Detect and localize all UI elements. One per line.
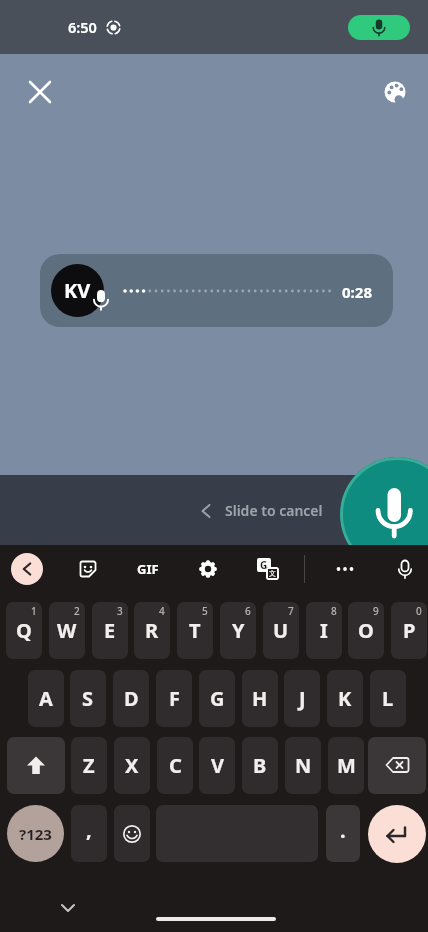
staticText: W xyxy=(57,617,77,644)
button[interactable]: I xyxy=(306,602,342,659)
staticText: 6:50 xyxy=(68,17,97,37)
staticText: 3 xyxy=(117,604,123,618)
staticText: O xyxy=(358,617,374,644)
staticText: P xyxy=(403,617,416,644)
button[interactable]: P xyxy=(391,602,427,659)
button[interactable] xyxy=(156,917,276,921)
staticText: A xyxy=(39,685,53,712)
button[interactable]: F xyxy=(156,670,192,727)
button[interactable] xyxy=(72,553,104,585)
staticText: Slide to cancel xyxy=(225,501,323,520)
button[interactable]: G xyxy=(252,553,284,585)
staticText: X xyxy=(125,752,139,779)
button[interactable] xyxy=(114,805,150,862)
staticText: L xyxy=(382,685,394,712)
staticText: 0 xyxy=(416,604,422,618)
staticText: H xyxy=(252,685,268,712)
staticText: V xyxy=(211,752,224,779)
staticText: 文 xyxy=(269,569,276,578)
staticText: ?123 xyxy=(19,824,52,844)
staticText: 7 xyxy=(288,604,294,618)
button[interactable]: . xyxy=(326,805,360,862)
button[interactable]: X xyxy=(114,737,150,794)
staticText: G xyxy=(210,685,225,712)
button[interactable]: , xyxy=(71,805,107,862)
button[interactable]: R xyxy=(134,602,170,659)
button[interactable]: KV xyxy=(40,254,393,327)
button[interactable]: L xyxy=(370,670,406,727)
button[interactable]: Q xyxy=(6,602,42,659)
button[interactable]: Slide to cancel xyxy=(198,495,333,527)
staticText: 4 xyxy=(159,604,165,618)
button[interactable]: E xyxy=(92,602,128,659)
button[interactable] xyxy=(379,76,411,108)
button[interactable] xyxy=(368,737,426,794)
button[interactable]: J xyxy=(284,670,320,727)
staticText: U xyxy=(273,617,289,644)
button[interactable] xyxy=(348,15,410,40)
button[interactable] xyxy=(53,893,83,923)
staticText: M xyxy=(337,752,356,779)
staticText: GIF xyxy=(137,560,159,578)
button[interactable]: B xyxy=(242,737,278,794)
staticText: D xyxy=(124,685,139,712)
button[interactable]: D xyxy=(113,670,149,727)
button[interactable]: H xyxy=(242,670,278,727)
staticText: 1 xyxy=(31,604,37,618)
button[interactable] xyxy=(24,76,56,108)
button[interactable] xyxy=(340,457,428,572)
staticText: Q xyxy=(16,617,32,644)
staticText: I xyxy=(320,617,328,644)
staticText: J xyxy=(299,685,306,712)
staticText: 8 xyxy=(331,604,337,618)
staticText: 0:28 xyxy=(342,282,372,302)
staticText: T xyxy=(189,617,201,644)
button[interactable]: GIF xyxy=(132,553,164,585)
button[interactable]: S xyxy=(70,670,106,727)
staticText: B xyxy=(253,752,267,779)
button[interactable]: V xyxy=(199,737,235,794)
staticText: R xyxy=(145,617,159,644)
button[interactable]: K xyxy=(327,670,363,727)
button[interactable]: ?123 xyxy=(7,805,64,862)
button[interactable]: T xyxy=(177,602,213,659)
button[interactable]: M xyxy=(328,737,364,794)
staticText: KV xyxy=(64,277,91,304)
staticText: 5 xyxy=(202,604,208,618)
staticText: K xyxy=(338,685,352,712)
button[interactable] xyxy=(389,553,421,585)
staticText: 6 xyxy=(245,604,251,618)
staticText: E xyxy=(104,617,116,644)
button[interactable]: C xyxy=(157,737,193,794)
staticText: Y xyxy=(232,617,245,644)
button[interactable] xyxy=(192,553,224,585)
button[interactable] xyxy=(368,805,426,863)
staticText: , xyxy=(86,816,92,843)
button[interactable]: A xyxy=(28,670,64,727)
button[interactable] xyxy=(329,553,361,585)
staticText: Z xyxy=(83,752,95,779)
staticText: F xyxy=(169,685,180,712)
button[interactable]: W xyxy=(49,602,85,659)
button[interactable]: U xyxy=(263,602,299,659)
button[interactable]: N xyxy=(285,737,321,794)
staticText: C xyxy=(169,752,182,779)
button[interactable] xyxy=(11,553,43,585)
staticText: N xyxy=(295,752,312,779)
button[interactable] xyxy=(7,737,65,794)
staticText: . xyxy=(340,817,346,844)
button[interactable]: O xyxy=(348,602,384,659)
button[interactable]: Z xyxy=(71,737,107,794)
staticText: 2 xyxy=(74,604,80,618)
staticText: 9 xyxy=(373,604,379,618)
staticText: G xyxy=(260,558,268,572)
staticText: S xyxy=(82,685,94,712)
button[interactable]: G xyxy=(199,670,235,727)
button[interactable]: Y xyxy=(220,602,256,659)
